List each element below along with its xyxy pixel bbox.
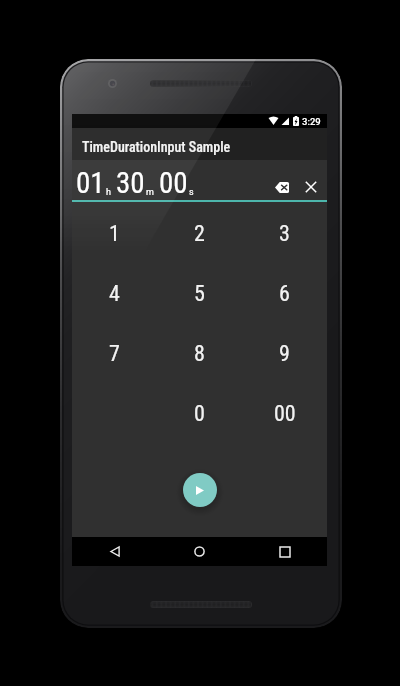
button[interactable]: TimeDurationInput Sample bbox=[72, 128, 327, 160]
staticText: 9 bbox=[279, 341, 290, 367]
button[interactable]: 9 bbox=[242, 324, 327, 384]
staticText: 2 bbox=[194, 221, 205, 247]
button[interactable]: 4 bbox=[72, 264, 157, 324]
staticText: 8 bbox=[194, 341, 205, 367]
staticText: 01 bbox=[76, 166, 105, 200]
button[interactable]: 6 bbox=[242, 264, 327, 324]
staticText: 5 bbox=[194, 281, 205, 307]
button[interactable]: Recents bbox=[271, 538, 298, 565]
button[interactable]: 3 bbox=[242, 203, 327, 264]
button[interactable]: Start bbox=[183, 473, 217, 507]
button[interactable]: 00 bbox=[242, 384, 327, 444]
staticText: 00 bbox=[274, 401, 296, 427]
staticText: 6 bbox=[279, 281, 290, 307]
staticText: 00 bbox=[159, 166, 188, 200]
staticText: TimeDurationInput Sample bbox=[82, 139, 231, 155]
button[interactable]: Clear bbox=[298, 174, 324, 200]
button[interactable]: Backspace bbox=[269, 174, 295, 200]
button[interactable]: 5 bbox=[157, 264, 242, 324]
button[interactable]: 8 bbox=[157, 324, 242, 384]
staticText: 1 bbox=[109, 221, 120, 247]
staticText: 0 bbox=[194, 401, 205, 427]
staticText: h bbox=[106, 187, 111, 198]
button[interactable]: 2 bbox=[157, 203, 242, 264]
staticText: m bbox=[146, 187, 154, 198]
button[interactable]: 1 bbox=[72, 203, 157, 264]
staticText: 7 bbox=[109, 341, 120, 367]
staticText: 3 bbox=[279, 221, 290, 247]
staticText: s bbox=[189, 187, 194, 198]
button[interactable]: 0 bbox=[157, 384, 242, 444]
button[interactable]: 7 bbox=[72, 324, 157, 384]
button[interactable]: Home bbox=[186, 538, 213, 565]
staticText: 3:29 bbox=[302, 116, 321, 127]
staticText: 4 bbox=[109, 281, 120, 307]
staticText: 30 bbox=[116, 166, 145, 200]
button[interactable]: Back bbox=[101, 538, 128, 565]
